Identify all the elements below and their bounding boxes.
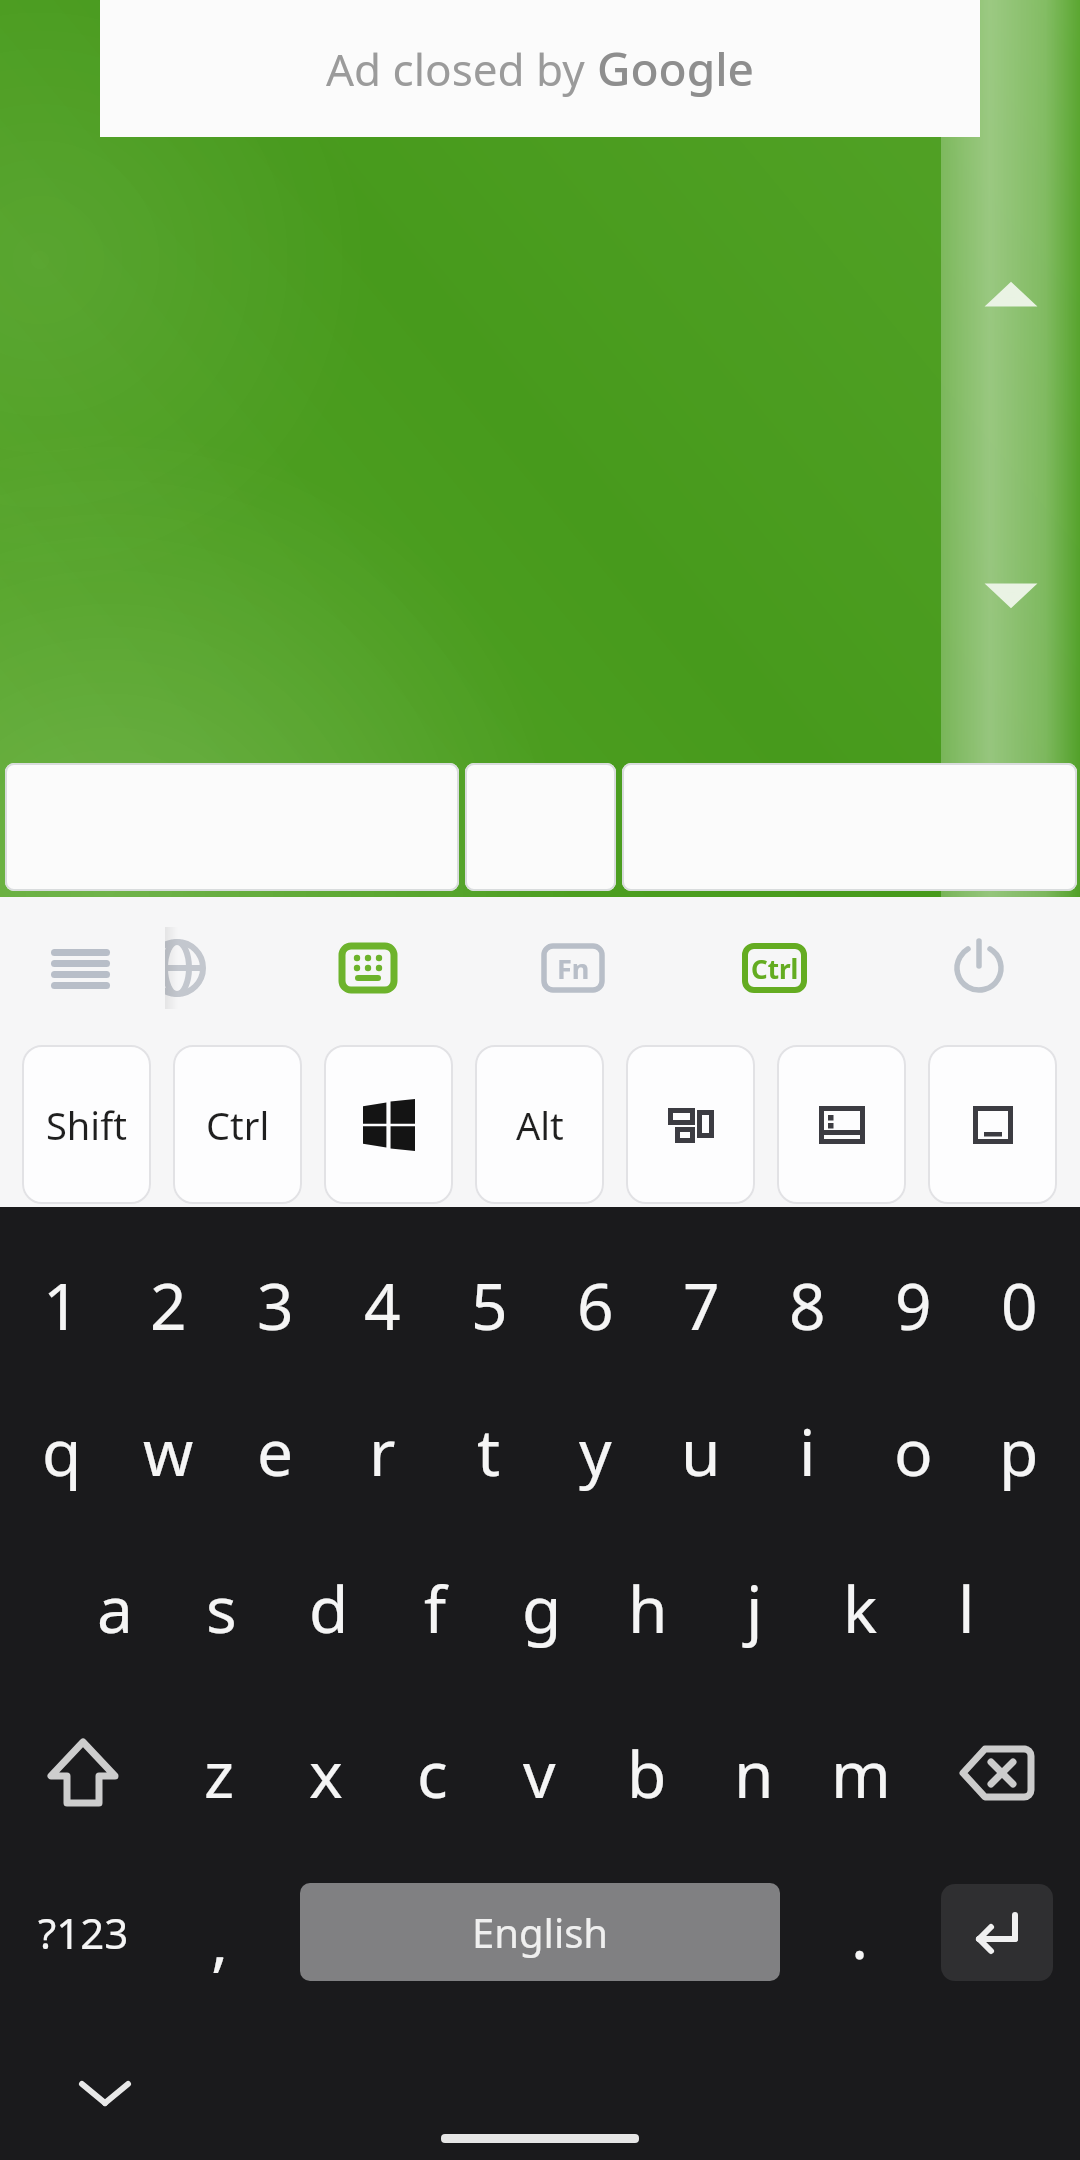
staticText: b: [627, 1730, 667, 1817]
button[interactable]: h: [595, 1533, 701, 1683]
button[interactable]: 5: [436, 1230, 542, 1380]
staticText: e: [257, 1408, 294, 1495]
button[interactable]: [913, 1857, 1080, 2007]
staticText: 8: [789, 1262, 826, 1349]
button[interactable]: 3: [222, 1230, 329, 1380]
button[interactable]: q: [8, 1376, 115, 1526]
staticText: .: [851, 1891, 869, 1978]
button[interactable]: p: [966, 1376, 1072, 1526]
staticText: 0: [1001, 1262, 1038, 1349]
button[interactable]: 4: [329, 1230, 436, 1380]
button[interactable]: g: [489, 1533, 595, 1683]
staticText: y: [579, 1408, 612, 1495]
button[interactable]: Ctrl: [173, 1045, 302, 1204]
button[interactable]: ?123: [0, 1857, 166, 2007]
button[interactable]: 2: [115, 1230, 222, 1380]
button[interactable]: Fn: [544, 946, 602, 990]
button[interactable]: y: [542, 1376, 648, 1526]
staticText: u: [681, 1408, 721, 1495]
staticText: 5: [471, 1262, 508, 1349]
staticText: k: [843, 1565, 878, 1652]
staticText: f: [424, 1565, 447, 1652]
button[interactable]: [777, 1045, 906, 1204]
staticText: t: [477, 1408, 501, 1495]
button[interactable]: 6: [542, 1230, 648, 1380]
staticText: 4: [364, 1262, 401, 1349]
staticText: ?123: [38, 1904, 129, 1961]
button[interactable]: n: [700, 1698, 807, 1848]
button[interactable]: v: [486, 1698, 593, 1848]
button[interactable]: [324, 1045, 453, 1204]
staticText: 2: [150, 1262, 187, 1349]
button[interactable]: w: [115, 1376, 222, 1526]
button[interactable]: m: [807, 1698, 914, 1848]
staticText: English: [472, 1905, 609, 1959]
staticText: r: [369, 1408, 396, 1495]
staticText: a: [97, 1565, 133, 1652]
staticText: x: [309, 1730, 343, 1817]
button[interactable]: 8: [754, 1230, 860, 1380]
staticText: l: [958, 1565, 975, 1652]
button[interactable]: [0, 1698, 166, 1848]
button[interactable]: t: [436, 1376, 542, 1526]
button[interactable]: .: [806, 1857, 913, 2007]
staticText: Fn: [557, 950, 590, 987]
button[interactable]: [626, 1045, 755, 1204]
staticText: 3: [257, 1262, 294, 1349]
button[interactable]: 9: [860, 1230, 966, 1380]
button[interactable]: r: [329, 1376, 436, 1526]
button[interactable]: 7: [648, 1230, 754, 1380]
button[interactable]: o: [860, 1376, 966, 1526]
button[interactable]: z: [166, 1698, 272, 1848]
staticText: s: [206, 1565, 237, 1652]
button[interactable]: i: [754, 1376, 860, 1526]
button[interactable]: Ctrl: [745, 946, 804, 990]
staticText: d: [309, 1565, 349, 1652]
staticText: 9: [895, 1262, 932, 1349]
staticText: i: [799, 1408, 816, 1495]
button[interactable]: English: [273, 1857, 806, 2007]
button[interactable]: ,: [166, 1857, 273, 2007]
staticText: z: [204, 1730, 235, 1817]
staticText: h: [628, 1565, 668, 1652]
staticText: m: [831, 1730, 891, 1817]
staticText: w: [143, 1408, 194, 1495]
button[interactable]: 0: [966, 1230, 1072, 1380]
button[interactable]: [5, 763, 459, 891]
staticText: Ad closed by: [326, 39, 597, 99]
staticText: c: [417, 1730, 448, 1817]
button[interactable]: l: [913, 1533, 1019, 1683]
button[interactable]: e: [222, 1376, 329, 1526]
button[interactable]: s: [168, 1533, 275, 1683]
button[interactable]: u: [648, 1376, 754, 1526]
button[interactable]: [928, 1045, 1057, 1204]
button[interactable]: Ad closed by: [100, 0, 980, 137]
staticText: 7: [683, 1262, 720, 1349]
staticText: 1: [43, 1262, 80, 1349]
staticText: Shift: [46, 1099, 127, 1151]
button[interactable]: [622, 763, 1077, 891]
staticText: g: [522, 1565, 562, 1652]
staticText: Ctrl: [751, 951, 799, 986]
staticText: v: [523, 1730, 556, 1817]
button[interactable]: f: [382, 1533, 489, 1683]
staticText: 6: [577, 1262, 614, 1349]
staticText: Ctrl: [206, 1099, 270, 1151]
staticText: j: [746, 1565, 763, 1652]
button[interactable]: [914, 1698, 1080, 1848]
button[interactable]: b: [593, 1698, 700, 1848]
button[interactable]: k: [807, 1533, 913, 1683]
staticText: n: [734, 1730, 774, 1817]
button[interactable]: x: [272, 1698, 379, 1848]
button[interactable]: 1: [8, 1230, 115, 1380]
button[interactable]: a: [61, 1533, 168, 1683]
button[interactable]: [465, 763, 616, 891]
staticText: p: [999, 1408, 1039, 1495]
button[interactable]: Shift: [22, 1045, 151, 1204]
staticText: ,: [211, 1897, 229, 1984]
button[interactable]: c: [379, 1698, 486, 1848]
staticText: Alt: [516, 1099, 564, 1151]
button[interactable]: d: [275, 1533, 382, 1683]
button[interactable]: Alt: [475, 1045, 604, 1204]
button[interactable]: j: [701, 1533, 807, 1683]
